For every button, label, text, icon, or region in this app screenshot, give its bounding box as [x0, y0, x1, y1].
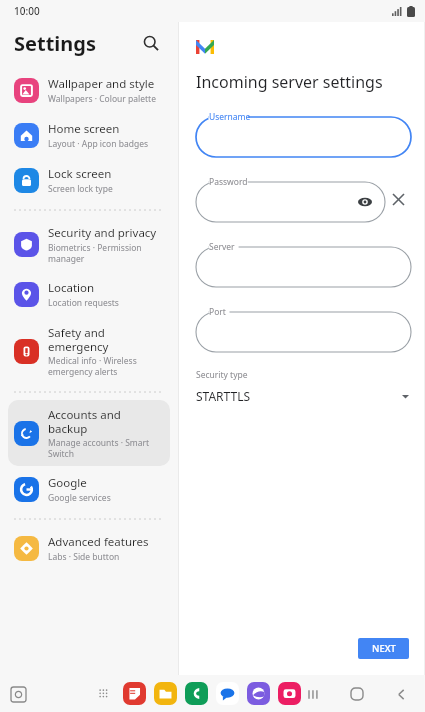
staticText: Password [209, 176, 248, 188]
staticText: Security and privacy [48, 225, 157, 241]
button[interactable]: Internet [247, 682, 270, 705]
button[interactable]: Apps [93, 683, 115, 705]
staticText: Wallpaper and style [48, 76, 155, 92]
staticText: Home screen [48, 121, 120, 137]
button[interactable]: Wallpaper and style [8, 69, 170, 112]
staticText: Settings [14, 30, 96, 57]
button[interactable]: Safety and emergency [8, 318, 170, 384]
button[interactable]: Show password [355, 192, 375, 212]
staticText: Port [209, 306, 226, 318]
button[interactable]: STARTTLS [196, 388, 411, 404]
staticText: Google services [48, 492, 111, 504]
staticText: Advanced features [48, 534, 149, 550]
staticText: Location [48, 280, 95, 296]
button[interactable]: Accounts and backup [8, 400, 170, 466]
button[interactable]: Home screen [8, 114, 170, 157]
staticText: Labs · Side button [48, 551, 120, 563]
button[interactable]: My Files [154, 682, 177, 705]
staticText: NEXT [372, 642, 396, 655]
staticText: Medical info · Wireless emergency alerts [48, 355, 162, 377]
button[interactable]: Camera [278, 682, 301, 705]
staticText: Biometrics · Permission manager [48, 242, 162, 264]
button[interactable]: Clear password [385, 186, 411, 212]
staticText: Safety and emergency [48, 325, 162, 354]
staticText: Server [209, 241, 235, 253]
button[interactable]: Advanced features [8, 527, 170, 570]
button[interactable]: Location [8, 273, 170, 316]
button[interactable]: Search settings [136, 28, 166, 58]
staticText: Layout · App icon badges [48, 138, 149, 150]
button[interactable]: Security and privacy [8, 218, 170, 271]
staticText: Username [209, 111, 251, 123]
staticText: 10:00 [14, 4, 40, 18]
staticText: Screen lock type [48, 183, 113, 195]
staticText: Manage accounts · Smart Switch [48, 437, 162, 459]
staticText: STARTTLS [196, 388, 402, 404]
staticText: Lock screen [48, 166, 112, 182]
button[interactable]: Back [389, 682, 413, 706]
button[interactable]: Messages [216, 682, 239, 705]
button[interactable]: NEXT [358, 638, 409, 659]
button[interactable]: Recents [301, 682, 325, 706]
button[interactable]: Recent apps [6, 682, 30, 706]
staticText: Location requests [48, 297, 119, 309]
staticText: Google [48, 475, 87, 491]
staticText: Wallpapers · Colour palette [48, 93, 156, 105]
staticText: Incoming server settings [196, 71, 383, 93]
button[interactable]: Phone [185, 682, 208, 705]
button[interactable]: Notes [123, 682, 146, 705]
staticText: Accounts and backup [48, 407, 162, 436]
button[interactable]: Home [345, 682, 369, 706]
staticText: Security type [196, 369, 248, 381]
button[interactable]: Google [8, 468, 170, 511]
button[interactable]: Lock screen [8, 159, 170, 202]
